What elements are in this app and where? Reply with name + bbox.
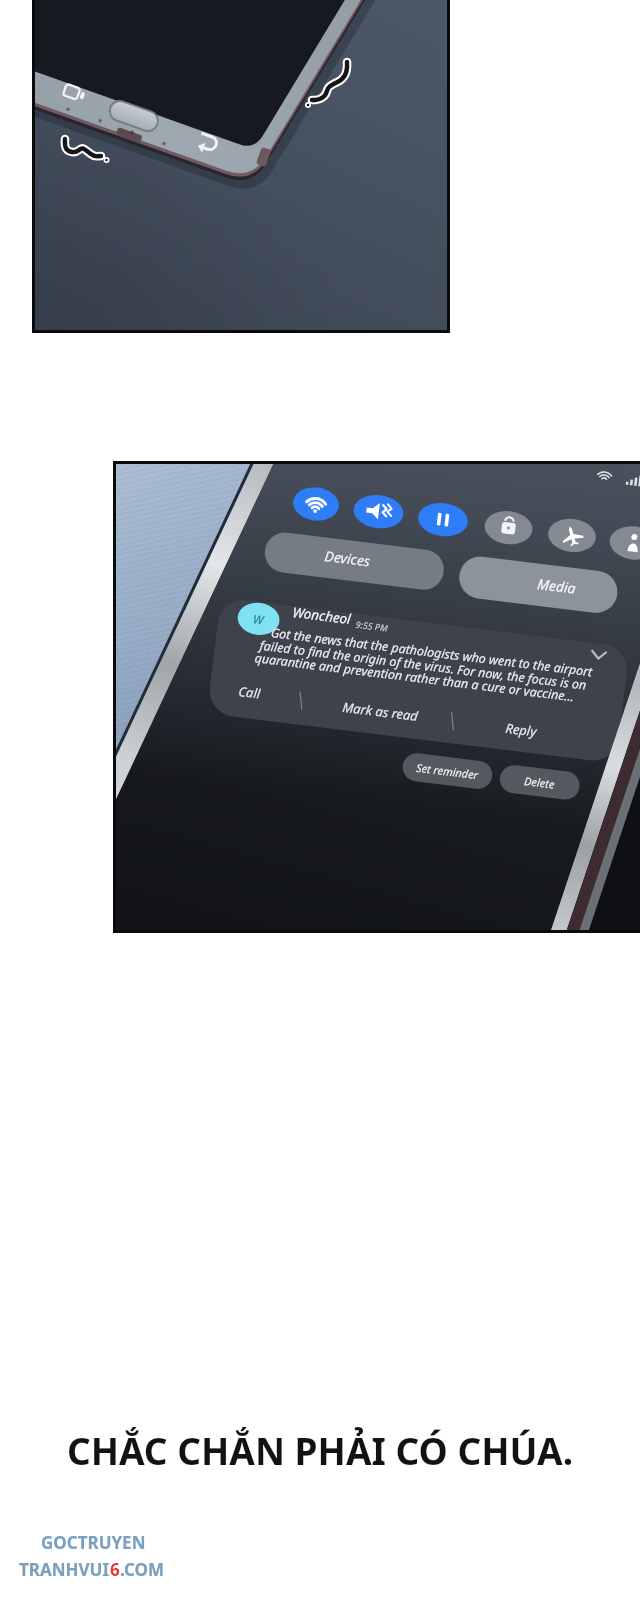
- staticText: TRANHVUI: [19, 1558, 110, 1581]
- staticText: .COM: [120, 1558, 164, 1581]
- staticText: CHẮC CHẮN PHẢI CÓ CHÚA.: [0, 1425, 640, 1475]
- staticText: GOCTRUYEN: [41, 1531, 146, 1554]
- staticText: 6: [110, 1558, 120, 1581]
